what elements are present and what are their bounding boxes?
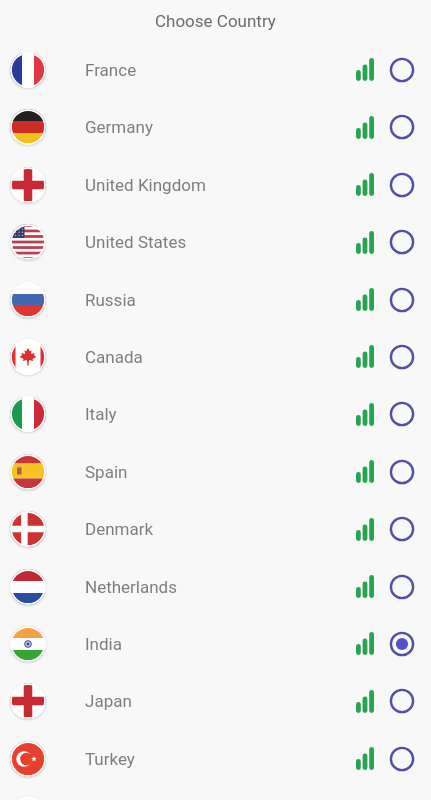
staticText: Italy <box>85 404 117 424</box>
staticText: Netherlands <box>85 577 177 597</box>
button[interactable]: Russia <box>0 271 431 328</box>
staticText: Spain <box>85 462 128 482</box>
staticText: Canada <box>85 347 143 367</box>
staticText: France <box>85 60 137 80</box>
staticText: United Kingdom <box>85 175 206 195</box>
button[interactable]: Spain <box>0 443 431 500</box>
button[interactable]: Denmark <box>0 500 431 558</box>
staticText: Russia <box>85 290 136 310</box>
staticText: Japan <box>85 691 132 711</box>
button[interactable]: Turkey <box>0 730 431 787</box>
button[interactable]: Japan <box>0 672 431 730</box>
button[interactable]: India <box>0 615 431 672</box>
button[interactable]: United States <box>0 213 431 271</box>
button[interactable]: United Kingdom <box>0 156 431 213</box>
staticText: Denmark <box>85 519 154 539</box>
staticText: Turkey <box>85 749 135 769</box>
button[interactable]: Netherlands <box>0 558 431 615</box>
button[interactable]: Germany <box>0 98 431 156</box>
staticText: Germany <box>85 117 153 137</box>
button[interactable]: Canada <box>0 328 431 385</box>
button[interactable]: France <box>0 41 431 98</box>
staticText: Choose Country <box>155 11 276 31</box>
staticText: India <box>85 634 122 654</box>
button[interactable]: Italy <box>0 385 431 443</box>
staticText: United States <box>85 232 187 252</box>
